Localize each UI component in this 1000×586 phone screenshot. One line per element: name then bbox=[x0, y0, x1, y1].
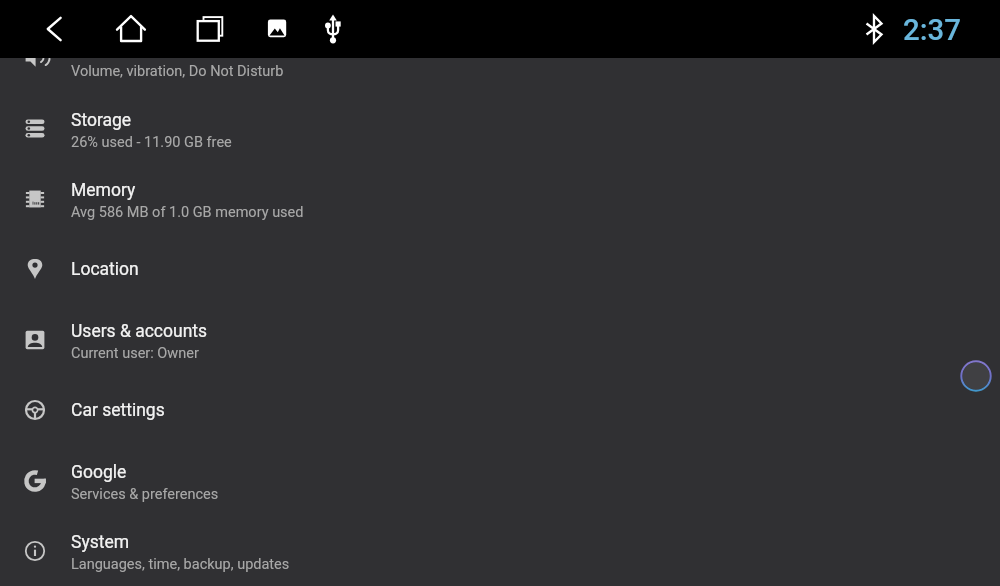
button[interactable]: USB bbox=[306, 0, 360, 58]
staticText: Location bbox=[71, 259, 139, 280]
staticText: 2:37 bbox=[903, 13, 961, 47]
button[interactable]: Memory bbox=[0, 164, 1000, 234]
staticText: Car settings bbox=[71, 400, 165, 421]
button[interactable]: Recent apps bbox=[183, 0, 237, 58]
staticText: Google bbox=[71, 462, 127, 483]
button[interactable]: Location bbox=[0, 234, 1000, 304]
staticText: Current user: Owner bbox=[71, 345, 199, 362]
button[interactable]: Bluetooth bbox=[857, 0, 891, 58]
staticText: Services & preferences bbox=[71, 486, 219, 503]
staticText: Memory bbox=[71, 180, 136, 201]
staticText: Sound bbox=[71, 39, 121, 60]
staticText: System bbox=[71, 532, 130, 553]
staticText: Avg 586 MB of 1.0 GB memory used bbox=[71, 204, 304, 221]
button[interactable]: Home bbox=[104, 0, 158, 58]
staticText: Users & accounts bbox=[71, 321, 208, 342]
button[interactable]: Sound bbox=[0, 23, 1000, 93]
staticText: Storage bbox=[71, 110, 132, 131]
button[interactable]: System bbox=[0, 516, 1000, 586]
button[interactable]: Users & accounts bbox=[0, 305, 1000, 375]
button[interactable]: Screenshot bbox=[250, 0, 304, 58]
staticText: Volume, vibration, Do Not Disturb bbox=[71, 63, 284, 80]
staticText: Languages, time, backup, updates bbox=[71, 556, 290, 573]
staticText: 26% used - 11.90 GB free bbox=[71, 134, 232, 151]
button[interactable]: Google bbox=[0, 446, 1000, 516]
button[interactable]: Storage bbox=[0, 94, 1000, 164]
button[interactable]: Back bbox=[27, 0, 81, 58]
button[interactable]: Car settings bbox=[0, 375, 1000, 445]
button[interactable]: Assistant bbox=[960, 360, 992, 392]
